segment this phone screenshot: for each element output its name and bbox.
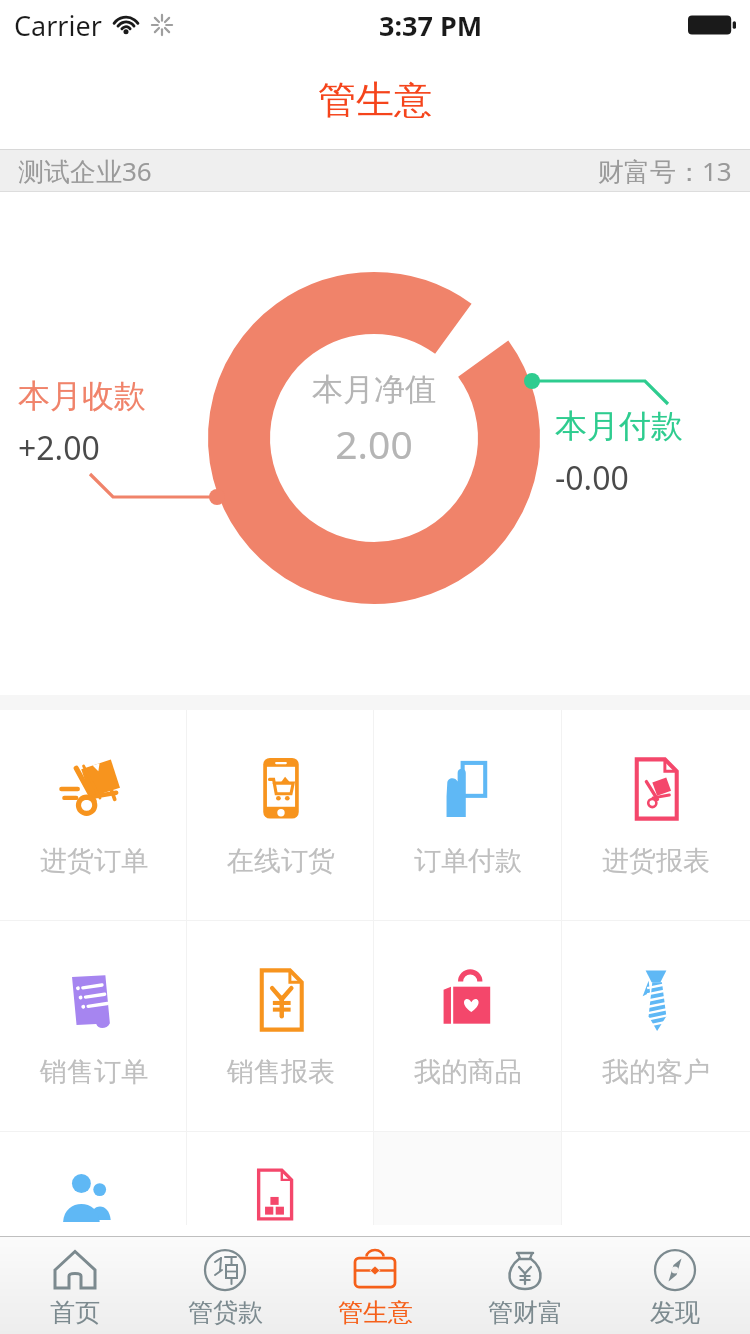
button[interactable]: 我的商品 (374, 921, 562, 1131)
staticText: 本月净值 (312, 370, 436, 409)
staticText: 我的商品 (414, 1055, 522, 1089)
staticText: 管生意 (338, 1297, 413, 1328)
button[interactable] (187, 1132, 374, 1225)
staticText: 发现 (650, 1297, 700, 1328)
button[interactable]: 销售订单 (0, 921, 187, 1131)
staticText: 2.00 (335, 417, 413, 470)
staticText: +2.00 (18, 426, 100, 470)
button[interactable]: 在线订货 (187, 710, 374, 920)
staticText: 订单付款 (414, 844, 522, 878)
button[interactable]: 进货报表 (562, 710, 750, 920)
staticText: 进货订单 (40, 844, 148, 878)
button[interactable] (0, 1132, 187, 1225)
staticText: 财富号：13 (598, 153, 732, 189)
button[interactable]: 进货订单 (0, 710, 187, 920)
button[interactable]: 管贷款 (150, 1237, 300, 1334)
staticText: 本月付款 (555, 406, 683, 446)
button[interactable]: 管财富 (450, 1237, 600, 1334)
staticText: 管财富 (488, 1297, 563, 1328)
staticText: -0.00 (555, 456, 629, 500)
button[interactable]: 发现 (600, 1237, 750, 1334)
button[interactable]: 订单付款 (374, 710, 562, 920)
staticText: 进货报表 (602, 844, 710, 878)
staticText: 3:37 PM (379, 7, 483, 44)
staticText: 管生意 (318, 76, 432, 124)
staticText: 首页 (50, 1297, 100, 1328)
staticText: 管贷款 (188, 1297, 263, 1328)
staticText: 我的客户 (602, 1055, 710, 1089)
staticText: 在线订货 (227, 844, 335, 878)
staticText: 销售报表 (227, 1055, 335, 1089)
staticText: 本月收款 (18, 376, 146, 416)
button[interactable]: 首页 (0, 1237, 150, 1334)
staticText: Carrier (14, 7, 102, 44)
button[interactable]: 我的客户 (562, 921, 750, 1131)
button[interactable]: 管生意 (300, 1237, 450, 1334)
staticText: 销售订单 (40, 1055, 148, 1089)
staticText: 测试企业36 (18, 153, 152, 189)
button[interactable]: 销售报表 (187, 921, 374, 1131)
